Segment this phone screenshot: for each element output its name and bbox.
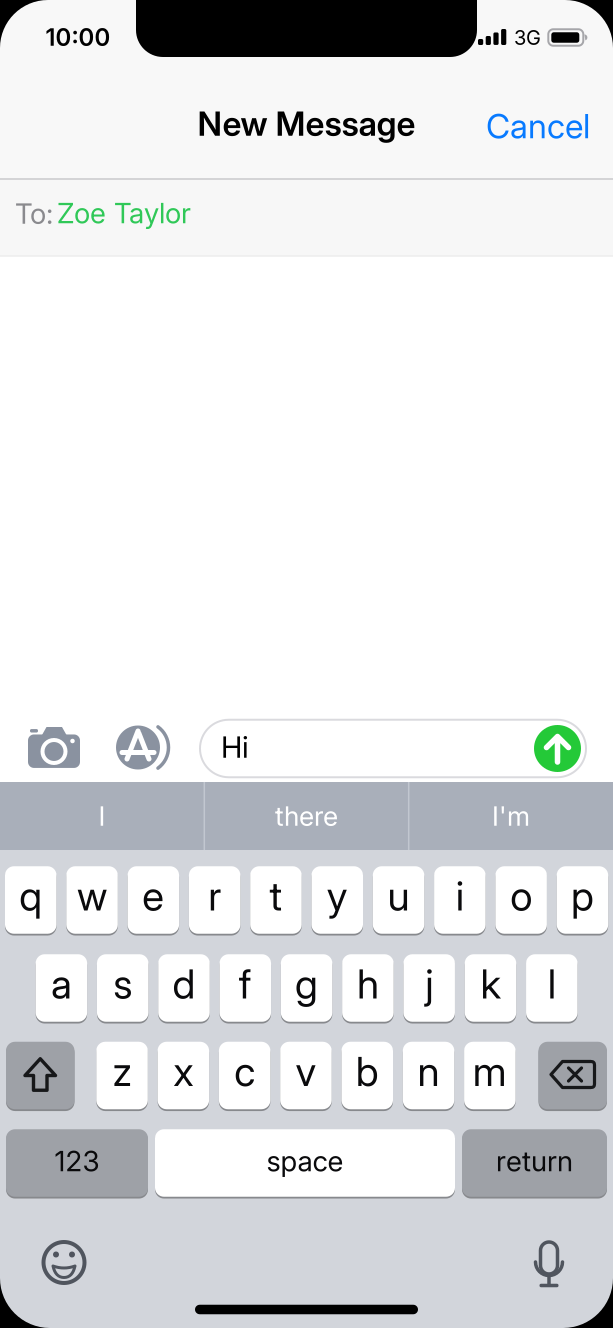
button[interactable]: Cancel xyxy=(486,106,590,146)
button[interactable]: 123 xyxy=(6,1128,148,1198)
staticText: a xyxy=(51,960,72,1008)
staticText: c xyxy=(234,1048,255,1095)
staticText: l xyxy=(548,960,556,1008)
staticText: return xyxy=(496,1144,573,1177)
button[interactable]: Send xyxy=(534,725,581,772)
staticText: New Message xyxy=(197,104,415,143)
staticText: z xyxy=(112,1048,131,1095)
staticText: 3G xyxy=(514,26,541,49)
staticText: I'm xyxy=(492,800,530,832)
button[interactable]: v xyxy=(280,1041,332,1110)
staticText: n xyxy=(418,1048,440,1095)
button[interactable]: Camera xyxy=(28,727,80,768)
staticText: f xyxy=(239,960,252,1008)
staticText: t xyxy=(269,872,282,920)
button[interactable]: Emoji xyxy=(43,1242,84,1283)
staticText: 123 xyxy=(54,1144,99,1177)
button[interactable]: k xyxy=(465,953,516,1023)
staticText: I xyxy=(98,800,105,832)
staticText: there xyxy=(275,800,338,832)
button[interactable]: n xyxy=(403,1041,454,1110)
staticText: m xyxy=(473,1048,507,1095)
button[interactable]: x xyxy=(158,1041,209,1110)
staticText: r xyxy=(208,872,221,920)
button[interactable]: w xyxy=(66,865,118,935)
button[interactable]: Shift xyxy=(6,1041,74,1110)
staticText: q xyxy=(19,872,42,920)
button[interactable]: m xyxy=(464,1041,516,1110)
staticText: b xyxy=(356,1048,379,1095)
button[interactable]: b xyxy=(341,1041,393,1110)
staticText: p xyxy=(571,872,594,920)
button[interactable]: j xyxy=(403,953,455,1023)
button[interactable]: a xyxy=(36,953,87,1023)
staticText: space xyxy=(266,1144,343,1177)
button[interactable]: h xyxy=(342,953,394,1023)
staticText: Hi xyxy=(221,730,249,764)
button[interactable]: o xyxy=(495,865,547,935)
button[interactable]: r xyxy=(189,865,240,935)
staticText: u xyxy=(388,872,410,920)
button[interactable]: I xyxy=(2,782,202,850)
button[interactable]: To: xyxy=(0,179,613,256)
staticText: y xyxy=(327,872,348,920)
staticText: x xyxy=(173,1048,193,1095)
staticText: Zoe Taylor xyxy=(57,196,191,229)
staticText: e xyxy=(142,872,164,920)
button[interactable]: there xyxy=(206,782,406,850)
button[interactable]: Delete xyxy=(538,1041,607,1110)
button[interactable]: e xyxy=(128,865,179,935)
staticText: h xyxy=(357,960,379,1008)
button[interactable]: d xyxy=(158,953,210,1023)
button[interactable]: q xyxy=(5,865,56,935)
staticText: s xyxy=(113,960,132,1008)
button[interactable]: Dictation xyxy=(529,1240,569,1288)
button[interactable]: space xyxy=(155,1128,455,1198)
button[interactable]: I'm xyxy=(411,782,611,850)
button[interactable]: Message xyxy=(200,720,586,777)
button[interactable]: y xyxy=(311,865,363,935)
staticText: o xyxy=(510,872,532,920)
staticText: v xyxy=(295,1048,316,1095)
button[interactable]: g xyxy=(281,953,332,1023)
staticText: 10:00 xyxy=(45,23,110,51)
button[interactable]: u xyxy=(373,865,424,935)
button[interactable]: i xyxy=(434,865,486,935)
staticText: Cancel xyxy=(486,106,590,146)
staticText: j xyxy=(425,960,433,1008)
button[interactable]: f xyxy=(220,953,271,1023)
staticText: To: xyxy=(15,197,53,230)
button[interactable]: z xyxy=(96,1041,148,1110)
button[interactable]: p xyxy=(557,865,608,935)
button[interactable]: l xyxy=(526,953,577,1023)
staticText: d xyxy=(172,960,195,1008)
button[interactable]: App Store apps xyxy=(114,725,174,770)
button[interactable]: return xyxy=(462,1128,607,1198)
staticText: k xyxy=(480,960,500,1008)
button[interactable]: c xyxy=(219,1041,270,1110)
button[interactable]: s xyxy=(97,953,148,1023)
button[interactable]: t xyxy=(250,865,302,935)
staticText: g xyxy=(295,960,318,1008)
staticText: w xyxy=(77,872,107,920)
staticText: i xyxy=(456,872,464,920)
